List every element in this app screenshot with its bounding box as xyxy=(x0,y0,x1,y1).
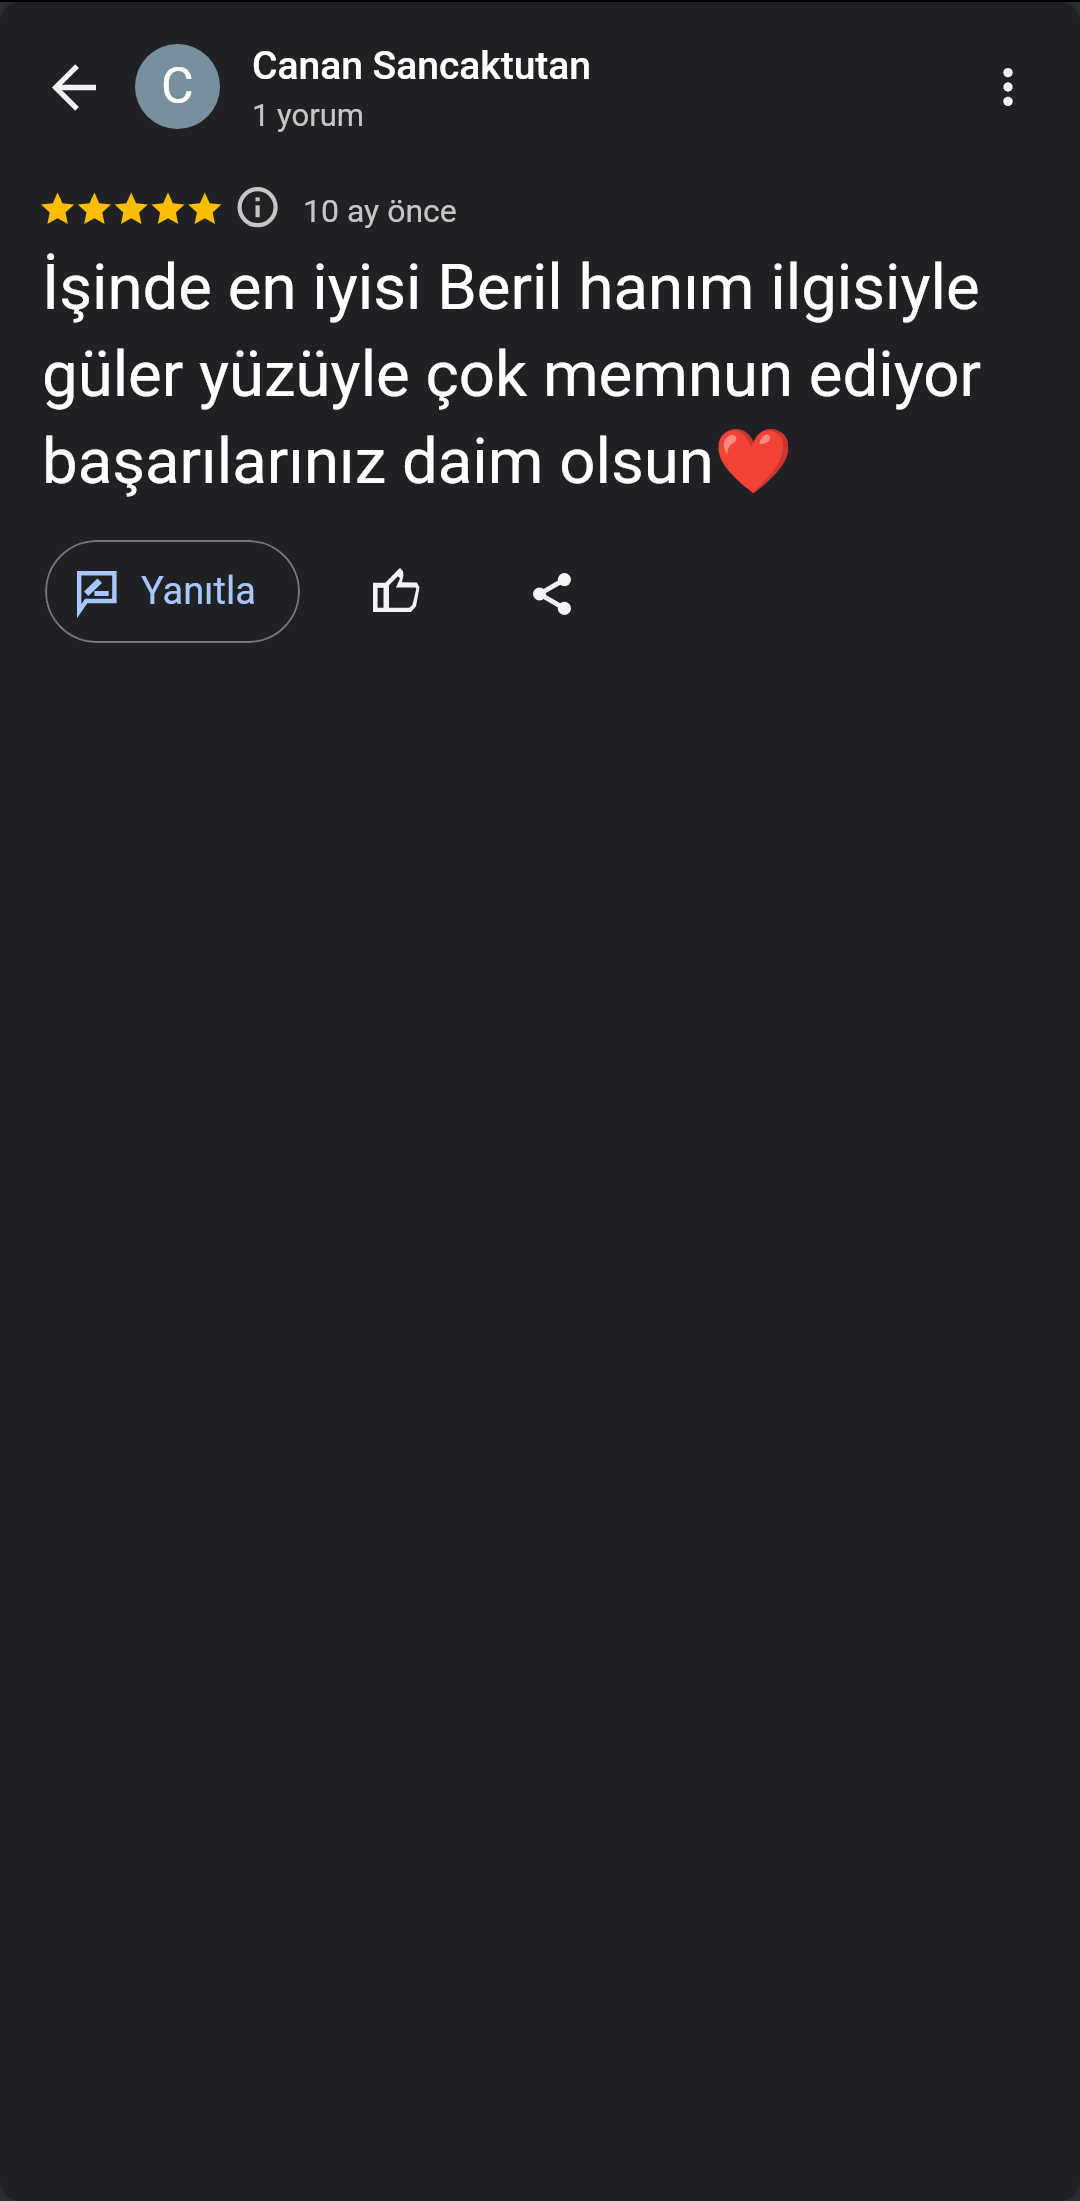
staticText: Canan Sancaktutan xyxy=(252,43,592,89)
button[interactable]: More options xyxy=(962,41,1054,133)
button[interactable]: Back xyxy=(28,41,120,133)
staticText: Yanıtla xyxy=(141,569,256,614)
staticText: C xyxy=(161,57,194,116)
staticText: İşinde en iyisi Beril hanım ilgisiyle gü… xyxy=(42,250,1027,498)
staticText: 10 ay önce xyxy=(303,192,457,230)
button[interactable]: Like xyxy=(350,544,442,636)
button[interactable]: Yanıtla xyxy=(45,540,300,643)
button[interactable]: Share xyxy=(506,548,598,640)
staticText: 1 yorum xyxy=(252,97,365,133)
